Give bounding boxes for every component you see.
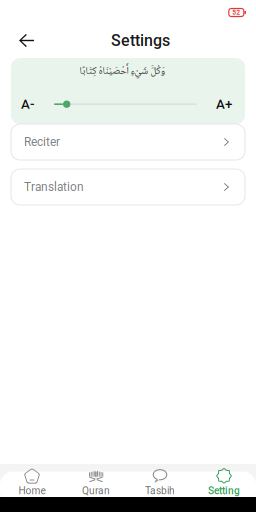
staticText: Settings <box>111 31 170 50</box>
staticText: Setting <box>208 485 240 497</box>
staticText: Translation <box>24 180 84 194</box>
staticText: A+ <box>216 96 232 112</box>
button[interactable]: Tasbih <box>128 468 192 497</box>
button[interactable]: Setting <box>192 468 256 497</box>
button[interactable]: Back <box>14 28 39 52</box>
staticText: A- <box>21 96 35 112</box>
staticText: Reciter <box>24 135 60 149</box>
button[interactable]: Quran <box>64 468 128 497</box>
button[interactable]: Home <box>0 468 64 497</box>
staticText: Tasbih <box>145 485 175 497</box>
staticText: Home <box>18 485 45 497</box>
staticText: Quran <box>82 485 110 497</box>
button[interactable]: Translation <box>11 169 245 205</box>
staticText: وَكُلَّ شَيْءٍ أَحْصَيْنَاهُ كِتَابًا <box>79 63 165 80</box>
staticText: 52 <box>232 9 240 16</box>
button[interactable]: Reciter <box>11 124 245 160</box>
